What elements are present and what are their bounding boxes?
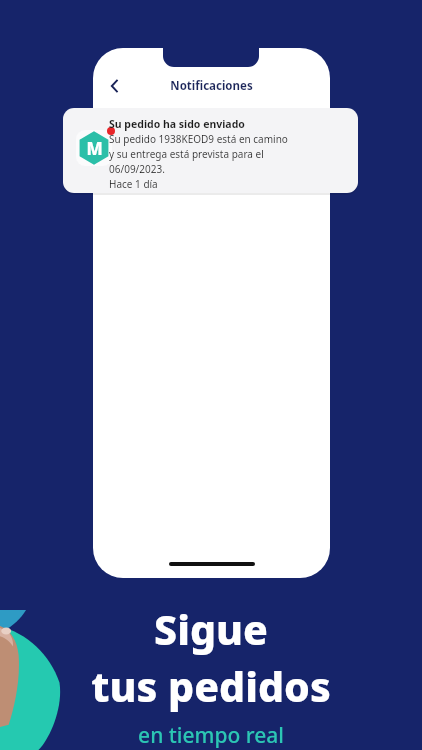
staticText: tus pedidos [91, 658, 331, 714]
staticText: en tiempo real [138, 721, 284, 750]
staticText: Sigue [154, 601, 268, 657]
staticText: Notificaciones [170, 78, 253, 94]
staticText: y su entrega está prevista para el [109, 147, 264, 161]
staticText: Su pedido ha sido enviado [109, 117, 245, 131]
button[interactable]: Back [99, 70, 131, 102]
staticText: 06/09/2023. [109, 162, 165, 176]
staticText: Su pedido 1938KEOD9 está en camino [109, 132, 288, 146]
staticText: M [86, 137, 103, 160]
staticText: Hace 1 día [109, 177, 158, 191]
button[interactable]: M [63, 108, 358, 193]
